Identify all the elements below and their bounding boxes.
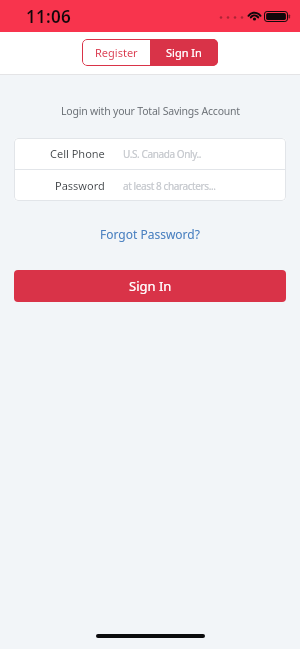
button[interactable]: Password [14, 170, 286, 201]
button[interactable]: Register [82, 39, 150, 66]
staticText: Sign In [166, 45, 202, 60]
staticText: Password [55, 178, 105, 193]
button[interactable]: Sign In [150, 39, 218, 66]
button[interactable]: Cell Phone [14, 138, 286, 169]
button[interactable]: Forgot Password? [100, 226, 200, 242]
staticText: Cell Phone [50, 146, 105, 161]
staticText: Login with your Total Savings Account [61, 104, 240, 118]
staticText: U.S. Canada Only.. [123, 147, 202, 161]
staticText: at least 8 characters... [123, 179, 216, 193]
staticText: 11:06 [26, 5, 72, 28]
staticText: Register [95, 45, 138, 60]
staticText: Sign In [129, 277, 172, 295]
button[interactable]: Sign In [14, 270, 286, 302]
